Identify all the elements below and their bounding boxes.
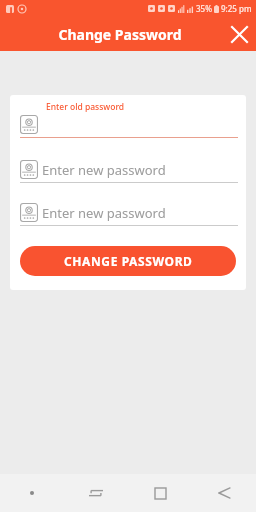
button[interactable]: Switch apps [64,474,128,512]
staticText: 35% [196,3,212,14]
staticText: 9:25 pm [221,3,252,14]
staticText: CHANGE PASSWORD [64,253,193,269]
button[interactable]: Enter old password [20,101,238,138]
staticText: Change Password [58,25,182,44]
button[interactable]: Enter new password [20,160,238,183]
button[interactable]: Enter new password [20,203,238,226]
button[interactable]: CHANGE PASSWORD [20,246,236,276]
button[interactable]: Close [222,17,256,51]
button[interactable]: Recent apps [128,474,192,512]
staticText: Enter new password [42,204,166,222]
staticText: Enter old password [46,101,125,113]
button[interactable]: Back [192,474,256,512]
button[interactable]: Menu [0,474,64,512]
staticText: Enter new password [42,161,166,179]
